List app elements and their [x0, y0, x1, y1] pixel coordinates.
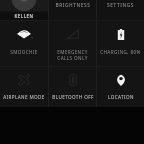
staticText: CHARGING, 80%: [100, 49, 141, 55]
staticText: BLUETOOTH OFF: [52, 94, 94, 100]
button[interactable]: User Kellen: [0, 0, 48, 20]
button[interactable]: BLUETOOTH OFF: [49, 93, 96, 107]
staticText: SETTINGS: [107, 2, 134, 9]
button[interactable]: EMERGENCY CALLS ONLY: [49, 48, 96, 66]
button[interactable]: SMOOCHIE: [0, 48, 48, 66]
button[interactable]: Battery charging: [97, 21, 144, 48]
button[interactable]: Wi-Fi: [0, 21, 48, 48]
staticText: SMOOCHIE: [10, 49, 38, 55]
button[interactable]: LOCATION: [97, 93, 144, 107]
staticText: KELLEN: [14, 13, 34, 19]
button[interactable]: Location: [97, 67, 144, 93]
button[interactable]: CHARGING, 80%: [97, 48, 144, 66]
button[interactable]: SETTINGS: [97, 0, 144, 20]
staticText: EMERGENCY CALLS ONLY: [51, 49, 94, 61]
button[interactable]: BRIGHTNESS: [49, 0, 96, 20]
button[interactable]: AIRPLANE MODE: [0, 93, 48, 107]
staticText: BRIGHTNESS: [55, 2, 91, 9]
staticText: AIRPLANE MODE: [3, 94, 45, 100]
staticText: LOCATION: [108, 94, 134, 100]
